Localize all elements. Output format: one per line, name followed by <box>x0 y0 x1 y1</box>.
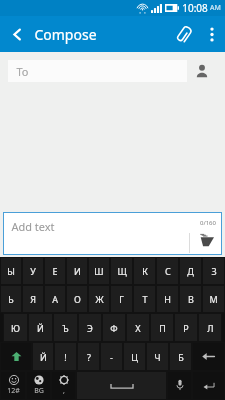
button[interactable]: Б <box>170 343 191 370</box>
staticText: Е <box>52 265 58 277</box>
button[interactable]: Pick contact <box>187 52 217 90</box>
button[interactable]: Back <box>0 16 34 52</box>
button[interactable]: Ь <box>1 286 21 312</box>
button[interactable]: Ш <box>89 258 109 284</box>
staticText: Г <box>119 293 124 305</box>
staticText: У <box>30 265 36 277</box>
staticText: В <box>188 293 194 305</box>
button[interactable]: Ц <box>124 343 145 370</box>
button[interactable]: Ф <box>103 314 125 341</box>
staticText: Х <box>135 322 141 334</box>
staticText: Add text <box>11 219 55 234</box>
button[interactable]: To <box>8 60 187 82</box>
button[interactable]: И <box>67 258 87 284</box>
button[interactable]: Е <box>45 258 65 284</box>
staticText: К <box>142 265 148 277</box>
button[interactable]: К <box>134 258 155 284</box>
staticText: 0/160 <box>200 219 216 227</box>
staticText: З <box>211 265 217 277</box>
staticText: Ш <box>94 265 104 277</box>
button[interactable]: Attach <box>167 16 199 52</box>
button[interactable]: - <box>101 343 122 370</box>
button[interactable]: Й <box>33 343 53 370</box>
staticText: Ы <box>7 265 15 277</box>
staticText: Ч <box>154 351 161 363</box>
staticText: Ъ <box>62 322 69 334</box>
button[interactable]: А <box>45 286 65 312</box>
staticText: ! <box>64 351 67 363</box>
button[interactable]: ! <box>55 343 76 370</box>
staticText: Щ <box>117 265 127 277</box>
staticText: AM <box>210 3 221 13</box>
button[interactable]: Ъ <box>54 314 77 341</box>
button[interactable]: У <box>23 258 43 284</box>
staticText: Э <box>87 322 93 334</box>
staticText: Т <box>142 293 148 305</box>
staticText: Б <box>178 351 184 363</box>
staticText: ? <box>87 351 91 363</box>
button[interactable]: М <box>203 286 224 312</box>
button[interactable]: П <box>151 314 173 341</box>
staticText: Ю <box>11 322 20 334</box>
staticText: С <box>165 265 171 277</box>
button[interactable]: О <box>67 286 87 312</box>
staticText: 12# <box>7 386 20 396</box>
staticText: BG <box>34 386 44 396</box>
staticText: Ь <box>8 293 14 305</box>
staticText: 10:08 <box>182 1 208 15</box>
staticText: И <box>74 265 81 277</box>
staticText: Ц <box>131 351 138 363</box>
button[interactable]: Д <box>180 258 201 284</box>
button[interactable]: Я <box>23 286 43 312</box>
button[interactable]: Space <box>77 372 166 399</box>
button[interactable]: Enter <box>193 372 224 399</box>
staticText: Compose <box>34 25 97 44</box>
staticText: Й <box>40 351 47 363</box>
button[interactable]: Л <box>199 314 221 341</box>
staticText: To <box>16 64 29 79</box>
button[interactable]: В <box>180 286 201 312</box>
button[interactable]: Voice input <box>168 372 191 399</box>
staticText: Й <box>37 322 44 334</box>
button[interactable]: Ы <box>1 258 21 284</box>
button[interactable]: Ж <box>89 286 109 312</box>
staticText: - <box>110 351 113 363</box>
button[interactable]: Settings <box>52 372 75 399</box>
staticText: А <box>52 293 58 305</box>
button[interactable]: Й <box>29 314 52 341</box>
button[interactable]: Н <box>157 286 178 312</box>
staticText: , <box>63 386 65 396</box>
button[interactable]: З <box>203 258 224 284</box>
button[interactable]: Т <box>134 286 155 312</box>
button[interactable]: Shift <box>1 343 31 370</box>
staticText: О <box>74 293 81 305</box>
staticText: Р <box>183 322 189 334</box>
button[interactable]: Emoji and symbols <box>1 372 25 399</box>
staticText: Я <box>30 293 36 305</box>
staticText: Ж <box>95 293 104 305</box>
staticText: Д <box>187 265 194 277</box>
button[interactable]: Change language <box>27 372 50 399</box>
button[interactable]: Ч <box>147 343 168 370</box>
button[interactable]: Г <box>111 286 132 312</box>
staticText: П <box>159 322 166 334</box>
staticText: Ф <box>110 322 118 334</box>
button[interactable]: Add text <box>3 212 222 255</box>
staticText: М <box>209 293 218 305</box>
staticText: Л <box>207 322 214 334</box>
button[interactable]: Ю <box>4 314 27 341</box>
button[interactable]: Х <box>127 314 149 341</box>
button[interactable]: More options <box>199 16 225 52</box>
button[interactable]: Backspace <box>193 343 224 370</box>
button[interactable]: Р <box>175 314 197 341</box>
button[interactable]: Send <box>192 225 222 255</box>
button[interactable]: Щ <box>111 258 132 284</box>
button[interactable]: ? <box>78 343 99 370</box>
button[interactable]: Э <box>79 314 101 341</box>
button[interactable]: С <box>157 258 178 284</box>
staticText: Н <box>164 293 171 305</box>
